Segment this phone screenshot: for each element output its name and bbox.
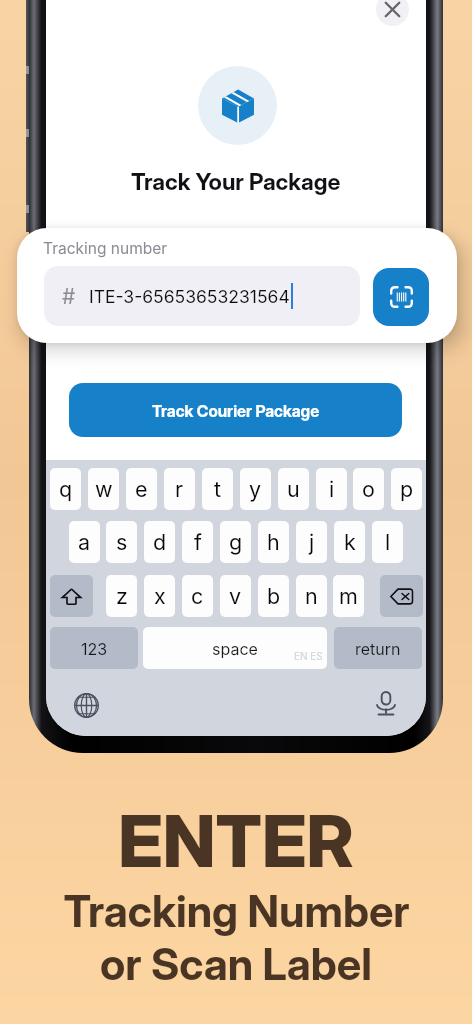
staticText: u <box>287 476 300 502</box>
button[interactable]: r <box>164 468 195 510</box>
button[interactable]: Shift <box>50 575 93 617</box>
button[interactable]: g <box>220 521 251 563</box>
staticText: return <box>355 639 401 658</box>
staticText: o <box>362 476 375 502</box>
staticText: space <box>212 639 258 658</box>
button[interactable]: j <box>296 521 327 563</box>
button[interactable]: e <box>126 468 157 510</box>
staticText: Track Your Package <box>131 168 341 196</box>
staticText: r <box>175 476 184 502</box>
staticText: # <box>62 284 76 309</box>
staticText: x <box>154 583 166 609</box>
button[interactable]: m <box>333 575 364 617</box>
button[interactable]: Track Courier Package <box>69 383 402 437</box>
button[interactable]: n <box>296 575 327 617</box>
button[interactable]: f <box>182 521 213 563</box>
staticText: t <box>214 476 222 502</box>
staticText: l <box>385 529 391 555</box>
staticText: j <box>309 529 315 555</box>
button[interactable]: i <box>316 468 347 510</box>
button[interactable]: y <box>240 468 271 510</box>
staticText: h <box>267 529 280 555</box>
button[interactable]: s <box>106 521 137 563</box>
button[interactable]: p <box>391 468 422 510</box>
button[interactable]: # <box>44 266 360 326</box>
staticText: f <box>194 529 202 555</box>
staticText: ITE-3-65653653231564 <box>89 286 290 307</box>
button[interactable]: u <box>278 468 309 510</box>
button[interactable]: return <box>334 627 422 669</box>
button[interactable]: t <box>202 468 233 510</box>
staticText: n <box>305 583 318 609</box>
button[interactable]: Backspace <box>380 575 423 617</box>
button[interactable]: q <box>50 468 81 510</box>
staticText: k <box>344 529 356 555</box>
button[interactable]: a <box>69 521 100 563</box>
staticText: z <box>116 583 128 609</box>
staticText: b <box>267 583 281 609</box>
staticText: w <box>95 476 113 502</box>
staticText: a <box>78 529 91 555</box>
button[interactable]: Dictate <box>372 690 400 718</box>
staticText: i <box>329 476 335 502</box>
button[interactable]: b <box>258 575 289 617</box>
staticText: Tracking number <box>43 239 168 258</box>
button[interactable]: space <box>143 627 327 669</box>
button[interactable]: l <box>372 521 403 563</box>
button[interactable]: d <box>144 521 175 563</box>
button[interactable]: c <box>182 575 213 617</box>
staticText: EN ES <box>294 650 323 662</box>
staticText: g <box>229 529 243 555</box>
staticText: or Scan Label <box>100 938 372 991</box>
staticText: v <box>229 583 242 609</box>
staticText: m <box>339 583 358 609</box>
staticText: d <box>153 529 167 555</box>
button[interactable]: Scan barcode <box>373 268 429 326</box>
staticText: e <box>135 476 148 502</box>
button[interactable]: w <box>88 468 119 510</box>
staticText: 123 <box>81 639 108 658</box>
button[interactable]: Close <box>376 0 409 26</box>
staticText: Tracking Number <box>63 885 410 938</box>
button[interactable]: x <box>144 575 175 617</box>
button[interactable]: o <box>353 468 384 510</box>
staticText: ENTER <box>118 797 354 884</box>
staticText: q <box>59 476 73 502</box>
staticText: p <box>400 476 414 502</box>
staticText: c <box>191 583 204 609</box>
staticText: s <box>116 529 128 555</box>
staticText: Track Courier Package <box>152 401 320 420</box>
button[interactable]: v <box>220 575 251 617</box>
button[interactable]: 123 <box>50 627 138 669</box>
button[interactable]: Change keyboard language <box>74 693 99 718</box>
button[interactable]: h <box>258 521 289 563</box>
button[interactable]: k <box>334 521 365 563</box>
staticText: y <box>249 476 262 502</box>
button[interactable]: z <box>106 575 137 617</box>
